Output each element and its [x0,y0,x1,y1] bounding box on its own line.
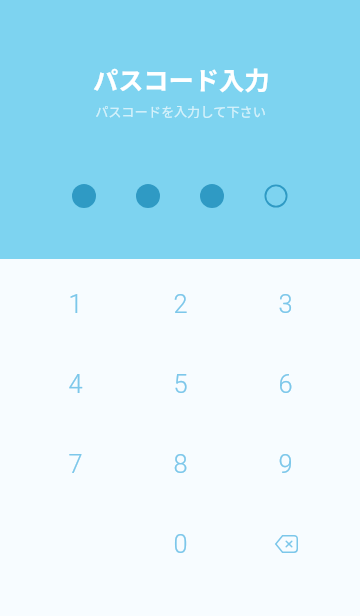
button[interactable]: 6 [233,344,338,424]
button[interactable]: Backspace [233,504,338,584]
staticText: パスコードを入力して下さい [95,102,267,121]
button[interactable]: 1 [23,264,128,344]
staticText: 4 [68,369,83,399]
button[interactable]: 7 [23,424,128,504]
staticText: 7 [68,449,83,479]
button[interactable]: 4 [23,344,128,424]
staticText: パスコード入力 [93,61,270,97]
staticText: 1 [68,289,83,319]
button[interactable]: 0 [128,504,233,584]
button[interactable]: 5 [128,344,233,424]
staticText: 5 [173,369,188,399]
staticText: 9 [278,449,293,479]
button[interactable]: 2 [128,264,233,344]
button[interactable]: 9 [233,424,338,504]
button[interactable]: 3 [233,264,338,344]
staticText: 0 [173,529,188,559]
staticText: 2 [173,289,188,319]
staticText: 3 [278,289,293,319]
button[interactable]: 8 [128,424,233,504]
staticText: 6 [278,369,293,399]
staticText: 8 [173,449,188,479]
